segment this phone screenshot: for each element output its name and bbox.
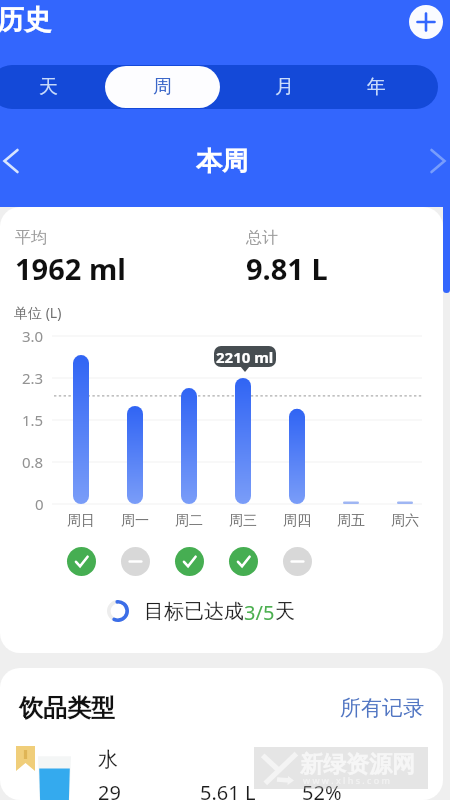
staticText: 52% xyxy=(302,779,342,800)
staticText: 周 xyxy=(153,75,172,99)
staticText: 天 xyxy=(39,75,58,99)
staticText: 0.8 xyxy=(22,452,44,472)
staticText: 周一 xyxy=(121,512,149,530)
staticText: 1.5 xyxy=(22,410,44,430)
staticText: 饮品类型 xyxy=(19,693,115,723)
button[interactable]: Next week xyxy=(426,138,450,184)
staticText: 周四 xyxy=(283,512,311,530)
staticText: w w w . x l h s . c o m xyxy=(303,774,390,786)
button[interactable]: 月 xyxy=(239,66,329,108)
staticText: 水 xyxy=(98,747,118,772)
button[interactable]: 所有记录 xyxy=(340,695,424,721)
button[interactable]: 天 xyxy=(3,66,93,108)
staticText: 周六 xyxy=(391,512,419,530)
staticText: 2210 ml xyxy=(216,347,274,367)
staticText: 29 xyxy=(98,779,121,800)
staticText: 目标已达成 xyxy=(144,599,244,623)
staticText: 年 xyxy=(367,75,386,99)
button[interactable]: 周 xyxy=(105,66,220,108)
staticText: 本周 xyxy=(20,145,424,178)
staticText: 新绿资源网 xyxy=(300,750,415,779)
button[interactable]: 年 xyxy=(331,66,421,108)
staticText: 3.0 xyxy=(22,326,44,346)
staticText: 单位 (L) xyxy=(14,303,62,322)
staticText: 5.61 L xyxy=(200,779,256,800)
staticText: 9.81 L xyxy=(246,249,328,288)
button[interactable]: Add record xyxy=(409,5,443,39)
staticText: 天 xyxy=(275,599,295,623)
button[interactable]: Previous week xyxy=(0,138,22,184)
staticText: 周五 xyxy=(337,512,365,530)
staticText: 2.3 xyxy=(22,368,44,388)
staticText: 所有记录 xyxy=(340,695,424,721)
staticText: 周日 xyxy=(67,512,95,530)
staticText: 月 xyxy=(275,75,294,99)
staticText: 3/5 xyxy=(244,599,275,623)
staticText: 周二 xyxy=(175,512,203,530)
staticText: 0 xyxy=(35,494,44,514)
staticText: 历史 xyxy=(0,3,51,37)
staticText: 总计 xyxy=(246,228,278,248)
staticText: 平均 xyxy=(15,228,47,248)
staticText: 周三 xyxy=(229,512,257,530)
staticText: 1962 ml xyxy=(15,249,126,288)
